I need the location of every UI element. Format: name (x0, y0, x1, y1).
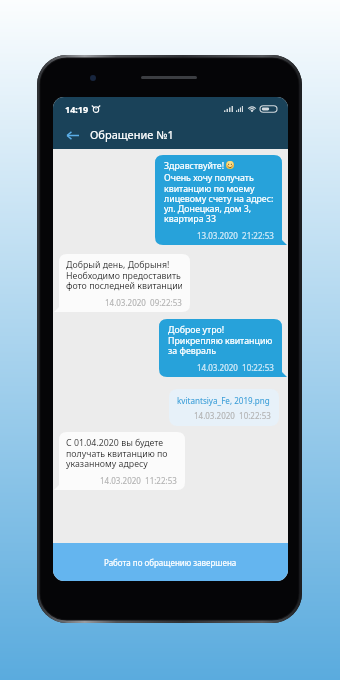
staticText: 14.03.2020 09:22:53 (105, 297, 182, 308)
staticText: Работа по обращению завершена (104, 557, 237, 568)
staticText: Доброе утро! Прикрепляю квитанцию за фев… (168, 324, 273, 357)
button[interactable]: С 01.04.2020 вы будете получать квитанци… (59, 432, 185, 490)
button[interactable]: Доброе утро! Прикрепляю квитанцию за фев… (159, 319, 282, 377)
button[interactable]: Back (62, 125, 82, 145)
staticText: kvitantsiya_Fe, 2019.png (177, 395, 270, 406)
staticText: 14.03.2020 10:22:53 (197, 362, 274, 373)
staticText: 14.03.2020 11:22:53 (100, 475, 177, 486)
staticText: Добрый день, Добрыня! Необходимо предост… (66, 259, 182, 292)
button[interactable]: Добрый день, Добрыня! Необходимо предост… (59, 254, 190, 312)
staticText: Обращение №1 (90, 127, 174, 142)
staticText: 14.03.2020 10:22:53 (194, 410, 271, 421)
button[interactable]: Работа по обращению завершена (53, 543, 288, 581)
staticText: 14:19 (65, 103, 89, 115)
button[interactable]: Здравствуйте! (155, 155, 282, 245)
staticText: Здравствуйте! (164, 160, 225, 172)
staticText: С 01.04.2020 вы будете получать квитанци… (66, 437, 168, 470)
button[interactable]: kvitantsiya_Fe, 2019.png (169, 389, 279, 426)
staticText: 13.03.2020 21:22:53 (197, 230, 274, 241)
staticText: Очень хочу получать квитанцию по моему л… (164, 172, 274, 225)
